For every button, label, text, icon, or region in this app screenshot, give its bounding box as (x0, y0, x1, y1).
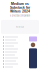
staticText: Medium vs (11, 2, 29, 6)
staticText: Substack for (10, 6, 30, 9)
staticText: 6 min read (16, 26, 24, 28)
staticText: a practical comparison (10, 14, 30, 17)
staticText: Writers 2024 (10, 9, 30, 13)
